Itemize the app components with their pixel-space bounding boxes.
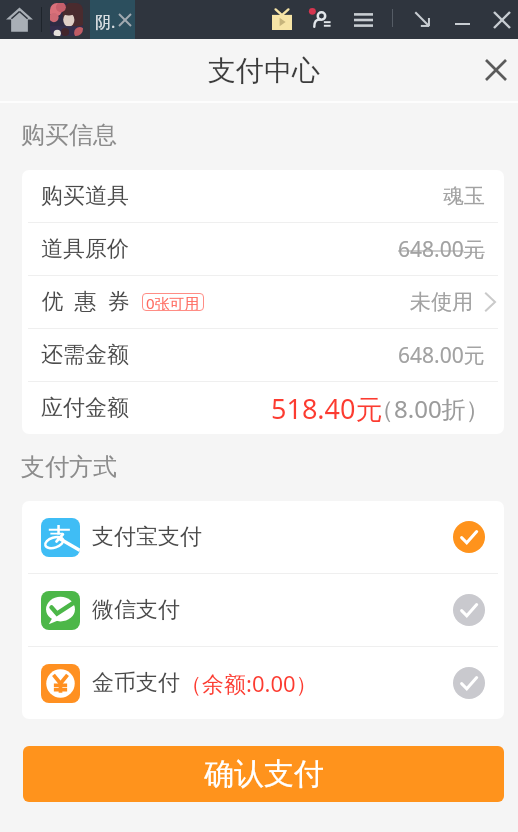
button[interactable]: 确认支付: [23, 746, 504, 802]
staticText: 确认支付: [204, 755, 324, 793]
staticText: 支付宝支付: [92, 523, 202, 551]
staticText: 518.40元: [271, 390, 383, 427]
staticText: 支付方式: [21, 452, 117, 482]
staticText: 支付中心: [208, 53, 320, 88]
button[interactable]: Close: [474, 39, 518, 101]
button[interactable]: Restore: [403, 0, 442, 39]
button[interactable]: 应付金额: [22, 382, 504, 434]
button[interactable]: 阴.: [90, 0, 135, 39]
staticText: 道具原价: [41, 235, 129, 263]
button[interactable]: 购买道具: [22, 170, 504, 222]
staticText: 648.00元: [398, 341, 485, 370]
button[interactable]: Friends: [301, 0, 340, 39]
staticText: 阴.: [95, 11, 116, 33]
staticText: 优惠券: [36, 288, 135, 316]
button[interactable]: 道具原价: [22, 223, 504, 275]
staticText: 金币支付: [92, 669, 180, 697]
staticText: 648.00元: [398, 235, 485, 264]
staticText: 购买信息: [21, 120, 117, 150]
staticText: （余额:0.00）: [180, 668, 318, 698]
button[interactable]: Live video: [262, 0, 301, 39]
button[interactable]: 支付宝支付: [22, 501, 504, 573]
button[interactable]: Minimize: [443, 0, 482, 39]
button[interactable]: Account avatar: [50, 3, 83, 36]
button[interactable]: Menu: [344, 0, 383, 39]
button[interactable]: 微信支付: [22, 574, 504, 646]
button[interactable]: 还需金额: [22, 329, 504, 381]
staticText: 购买道具: [41, 182, 129, 210]
button[interactable]: Home: [0, 0, 39, 39]
button[interactable]: 金币支付: [22, 647, 504, 719]
button[interactable]: Close window: [485, 0, 518, 39]
staticText: 微信支付: [92, 596, 180, 624]
staticText: 魂玉: [443, 183, 485, 209]
staticText: 0张可用: [146, 293, 200, 311]
staticText: 未使用: [410, 289, 473, 315]
button[interactable]: 优惠券: [22, 276, 504, 328]
staticText: （8.00折）: [370, 392, 490, 425]
staticText: 还需金额: [41, 341, 129, 369]
staticText: 应付金额: [41, 394, 129, 422]
